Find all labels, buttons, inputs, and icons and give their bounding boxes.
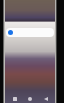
button[interactable]: Home [24,94,36,103]
button[interactable] [6,28,54,37]
button[interactable]: Back [40,94,52,103]
button[interactable]: Recents [9,94,21,103]
